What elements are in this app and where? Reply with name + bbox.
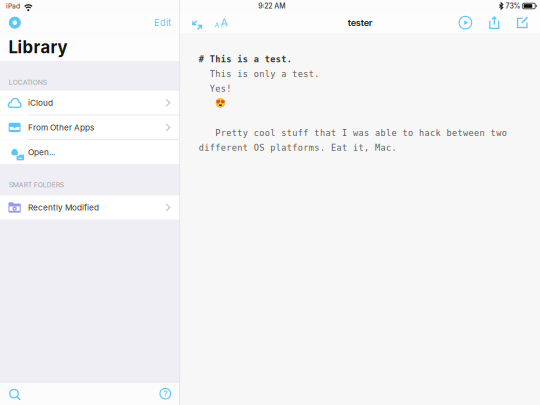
button[interactable]: From Other Apps (0, 115, 179, 139)
staticText: tester (348, 17, 373, 28)
staticText: iCloud (28, 98, 53, 108)
button[interactable]: Share (480, 13, 508, 32)
button[interactable]: iCloud (0, 91, 179, 115)
staticText: From Other Apps (28, 122, 94, 132)
button[interactable]: Recently Modified (0, 195, 179, 219)
staticText: SMART FOLDERS (9, 181, 64, 189)
staticText: A (220, 16, 227, 29)
button[interactable]: Play (454, 12, 480, 33)
staticText: iPad (6, 2, 20, 10)
button[interactable]: Search (0, 383, 25, 404)
staticText: 😍 (199, 98, 229, 109)
staticText: different OS platforms. Eat it, Mac. (199, 142, 415, 153)
staticText: ? (163, 389, 167, 398)
staticText: # This is a test. (199, 53, 301, 64)
button[interactable]: Help (154, 383, 179, 404)
staticText: This is only a test. (199, 68, 331, 79)
staticText: A (215, 21, 220, 29)
staticText: Open... (28, 147, 55, 157)
staticText: Yes! (199, 83, 235, 94)
button[interactable]: Compose (508, 13, 540, 33)
staticText: Library (9, 37, 68, 57)
button[interactable]: Edit (148, 13, 179, 32)
button[interactable]: Text size (205, 13, 232, 33)
staticText: 9:22 AM (258, 2, 285, 10)
staticText: Pretty cool stuff that I was able to hac… (199, 127, 535, 138)
staticText: 73% (505, 2, 520, 10)
button[interactable]: Expand (180, 12, 205, 33)
staticText: LOCATIONS (9, 78, 47, 86)
button[interactable]: Settings (0, 12, 27, 33)
staticText: Edit (154, 17, 171, 28)
button[interactable]: Open... (0, 140, 179, 164)
staticText: Recently Modified (28, 202, 99, 212)
